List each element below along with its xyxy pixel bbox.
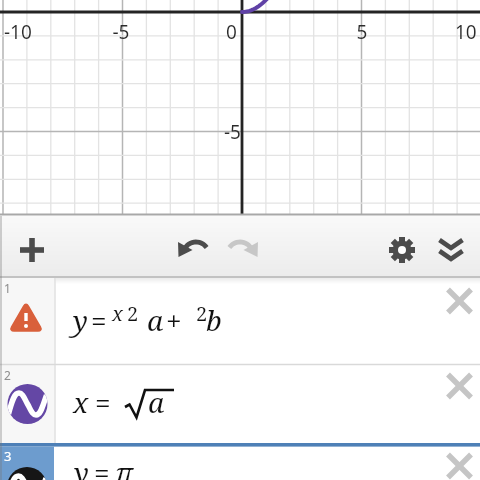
button[interactable] — [8, 216, 56, 276]
button[interactable] — [438, 280, 480, 324]
button[interactable] — [0, 278, 480, 365]
button[interactable] — [438, 444, 480, 480]
button[interactable] — [172, 216, 218, 276]
button[interactable] — [0, 440, 480, 480]
button[interactable] — [0, 365, 480, 440]
button[interactable] — [438, 364, 480, 408]
button[interactable] — [220, 216, 266, 276]
button[interactable] — [427, 216, 475, 276]
button[interactable] — [378, 216, 426, 276]
